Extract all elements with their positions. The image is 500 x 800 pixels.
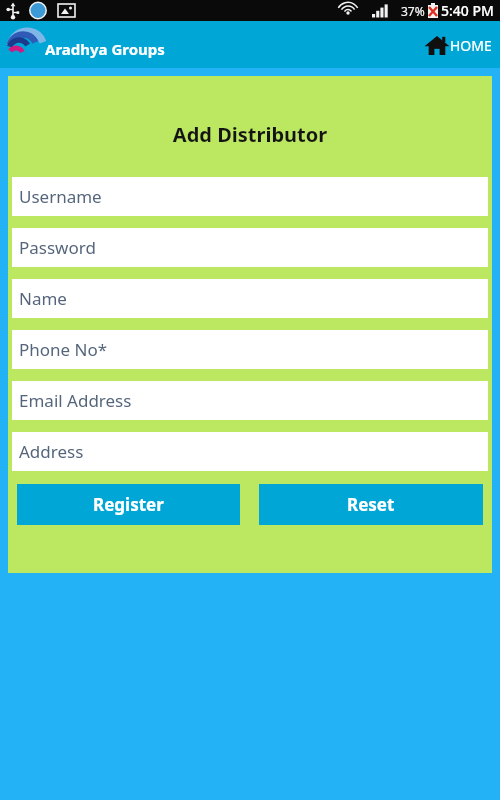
- button[interactable]: Name: [12, 279, 488, 318]
- button[interactable]: Home: [420, 29, 496, 61]
- button[interactable]: Phone No*: [12, 330, 488, 369]
- button[interactable]: Email Address: [12, 381, 488, 420]
- staticText: Address: [19, 440, 84, 463]
- button[interactable]: Register: [17, 484, 240, 525]
- staticText: Reset: [347, 493, 395, 516]
- button[interactable]: Username: [12, 177, 488, 216]
- button[interactable]: Password: [12, 228, 488, 267]
- staticText: 5:40 PM: [441, 1, 494, 20]
- staticText: Phone No*: [19, 338, 108, 361]
- staticText: 37%: [401, 3, 425, 19]
- staticText: Email Address: [19, 389, 132, 412]
- staticText: Add Distributor: [8, 121, 492, 148]
- staticText: Aradhya Groups: [45, 39, 165, 59]
- staticText: Password: [19, 236, 96, 259]
- staticText: Username: [19, 185, 102, 208]
- button[interactable]: Reset: [259, 484, 483, 525]
- button[interactable]: Address: [12, 432, 488, 471]
- staticText: Name: [19, 287, 67, 310]
- staticText: HOME: [450, 36, 492, 55]
- staticText: Register: [93, 493, 164, 516]
